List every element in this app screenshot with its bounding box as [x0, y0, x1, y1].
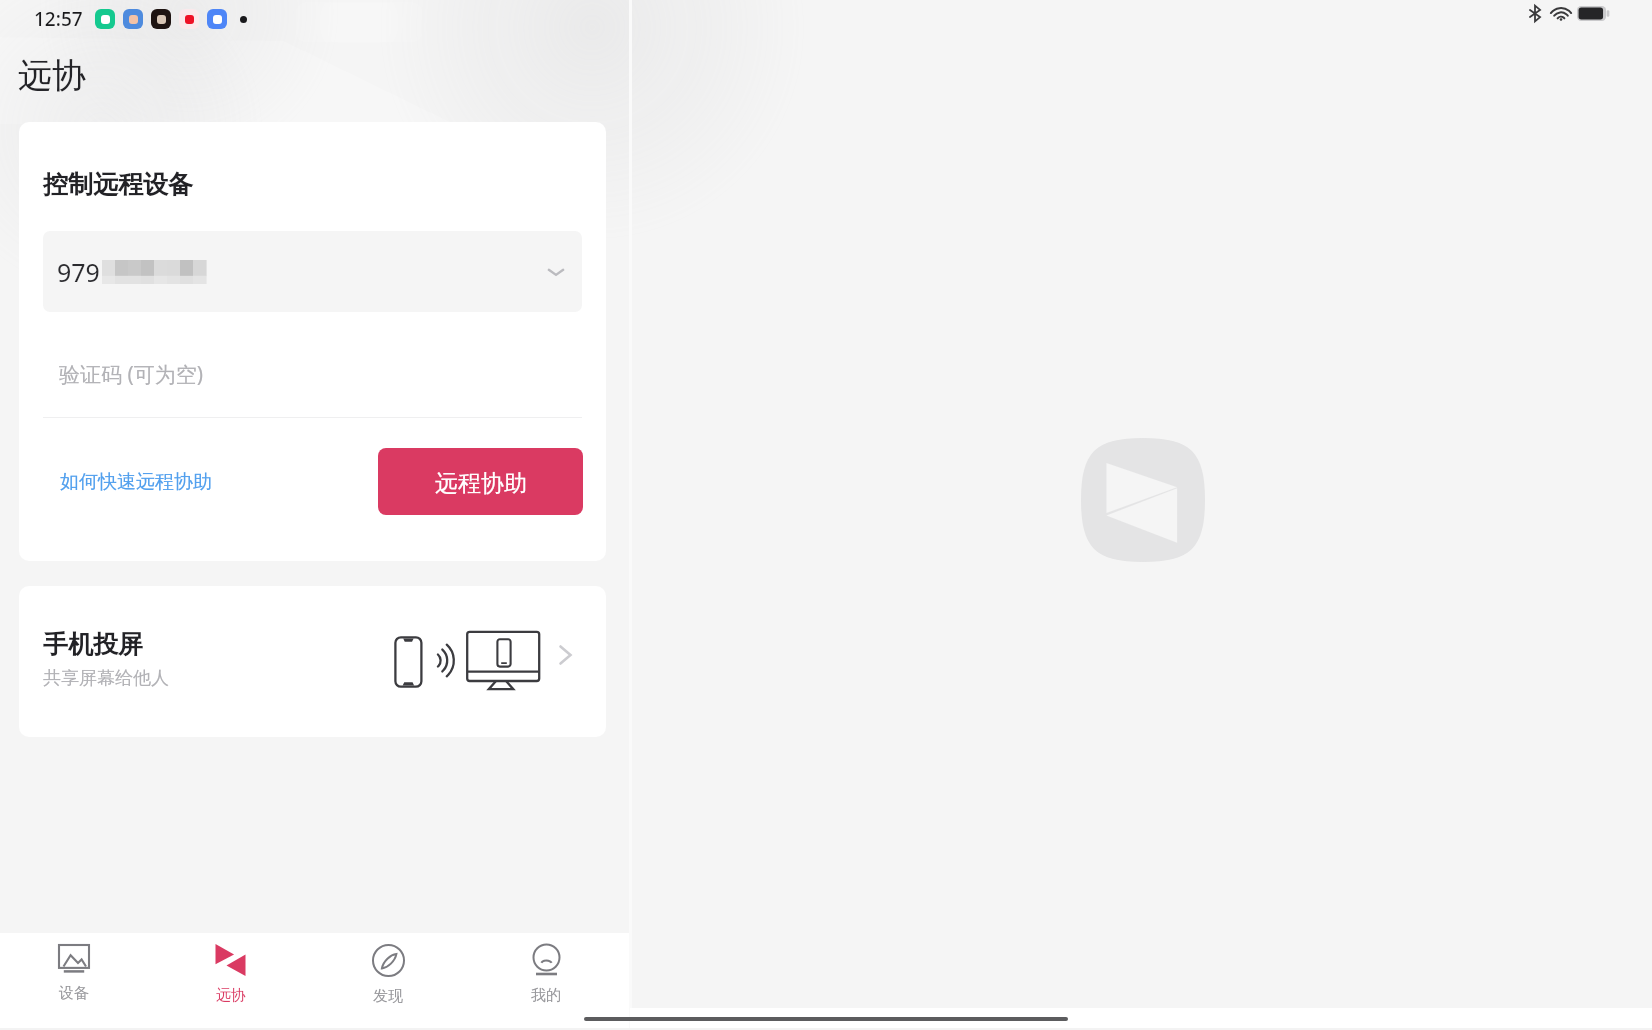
button[interactable]: 手机投屏 [19, 586, 606, 737]
staticText: 远协 [216, 986, 246, 1005]
staticText: 12:57 [34, 6, 83, 32]
button[interactable]: 发现 [309, 933, 467, 1030]
staticText: 共享屏幕给他人 [43, 667, 169, 690]
other: Battery [1577, 6, 1610, 21]
staticText: 验证码 (可为空) [59, 360, 204, 389]
button[interactable]: 设备 [0, 933, 152, 1030]
staticText: 我的 [531, 986, 561, 1005]
staticText: 远程协助 [435, 469, 527, 498]
staticText: 控制远程设备 [43, 169, 193, 200]
staticText: 手机投屏 [43, 629, 143, 660]
staticText: 如何快速远程协助 [60, 470, 212, 494]
button[interactable]: 我的 [467, 933, 625, 1030]
button[interactable]: 979 [43, 231, 582, 312]
other: Bluetooth [1529, 5, 1541, 22]
staticText: 设备 [59, 984, 89, 1003]
button[interactable]: 远程协助 [378, 448, 583, 515]
other: Wi-Fi [1551, 5, 1571, 22]
button[interactable]: 远协 [152, 933, 309, 1030]
button[interactable]: 如何快速远程协助 [43, 448, 229, 515]
staticText: 发现 [373, 987, 403, 1006]
staticText: 远协 [18, 54, 86, 97]
staticText: 979 [57, 255, 100, 289]
